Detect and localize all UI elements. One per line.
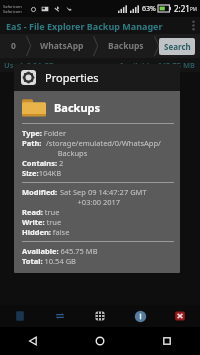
staticText: Write: true (22, 217, 62, 227)
staticText: /storage/emulated/0/WhatsApp/ Backups (46, 138, 161, 158)
staticText: Available: 645.75 MB (119, 60, 196, 70)
staticText: Backups (54, 100, 101, 115)
button[interactable]: Recents (133, 327, 200, 355)
button[interactable]: Select all (80, 305, 120, 327)
staticText: Size:104KB (22, 168, 62, 178)
staticText: 2:21 (174, 3, 190, 14)
staticText: Available: 645.75 MB (22, 246, 98, 256)
staticText: Type: Folder (22, 128, 67, 138)
staticText: 63% (142, 4, 156, 14)
button[interactable]: Refresh (40, 305, 80, 327)
staticText: WhatsApp (40, 40, 84, 52)
button[interactable]: Paste (0, 305, 40, 327)
staticText: Total: 10.54 GB (22, 256, 76, 266)
staticText: Backups (108, 40, 144, 52)
staticText: EaS - File Explorer Backup Manager (6, 20, 163, 32)
staticText: Path: (22, 138, 46, 148)
staticText: Search (164, 41, 191, 52)
staticText: Safaricom (3, 4, 22, 9)
staticText: Modified: (22, 187, 60, 197)
staticText: Hidden: false (22, 227, 70, 237)
button[interactable]: 0 (0, 34, 26, 58)
button[interactable]: Home (66, 327, 133, 355)
staticText: Used: 9.91 GB (4, 60, 55, 70)
staticText: Contains: 2 (22, 158, 64, 168)
button[interactable]: Backups (98, 34, 154, 58)
staticText: PM (190, 6, 197, 12)
staticText: 0 (11, 40, 16, 52)
button[interactable]: Info (120, 305, 160, 327)
button[interactable]: Back (0, 327, 66, 355)
button[interactable]: More options (186, 17, 200, 34)
staticText: Sat Sep 09 14:47:27 GMT +03:00 2017 (60, 187, 147, 207)
button[interactable]: Search (159, 38, 195, 55)
button[interactable]: WhatsApp (31, 34, 93, 58)
button[interactable]: Delete (160, 305, 200, 327)
staticText: Read: true (22, 207, 60, 217)
staticText: Properties (45, 70, 99, 85)
staticText: Safaricom (3, 9, 22, 14)
